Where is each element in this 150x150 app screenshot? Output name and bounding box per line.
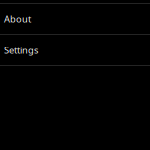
button[interactable]: About — [0, 4, 150, 34]
staticText: Settings — [4, 44, 38, 56]
staticText: About — [4, 13, 31, 25]
button[interactable]: Settings — [0, 35, 150, 65]
